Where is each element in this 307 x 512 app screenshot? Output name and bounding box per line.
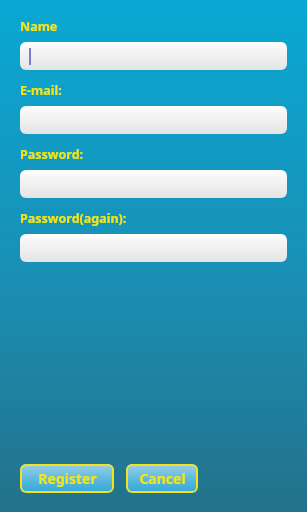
- staticText: Cancel: [139, 469, 186, 488]
- button[interactable]: [20, 106, 287, 134]
- button[interactable]: Cancel: [126, 464, 198, 493]
- button[interactable]: [20, 234, 287, 262]
- staticText: E-mail:: [20, 82, 62, 99]
- staticText: Password(again):: [20, 210, 127, 227]
- staticText: Register: [38, 469, 97, 488]
- staticText: Name: [20, 18, 58, 35]
- button[interactable]: Register: [20, 464, 114, 493]
- button[interactable]: [20, 170, 287, 198]
- staticText: Password:: [20, 146, 84, 163]
- button[interactable]: [20, 42, 287, 70]
